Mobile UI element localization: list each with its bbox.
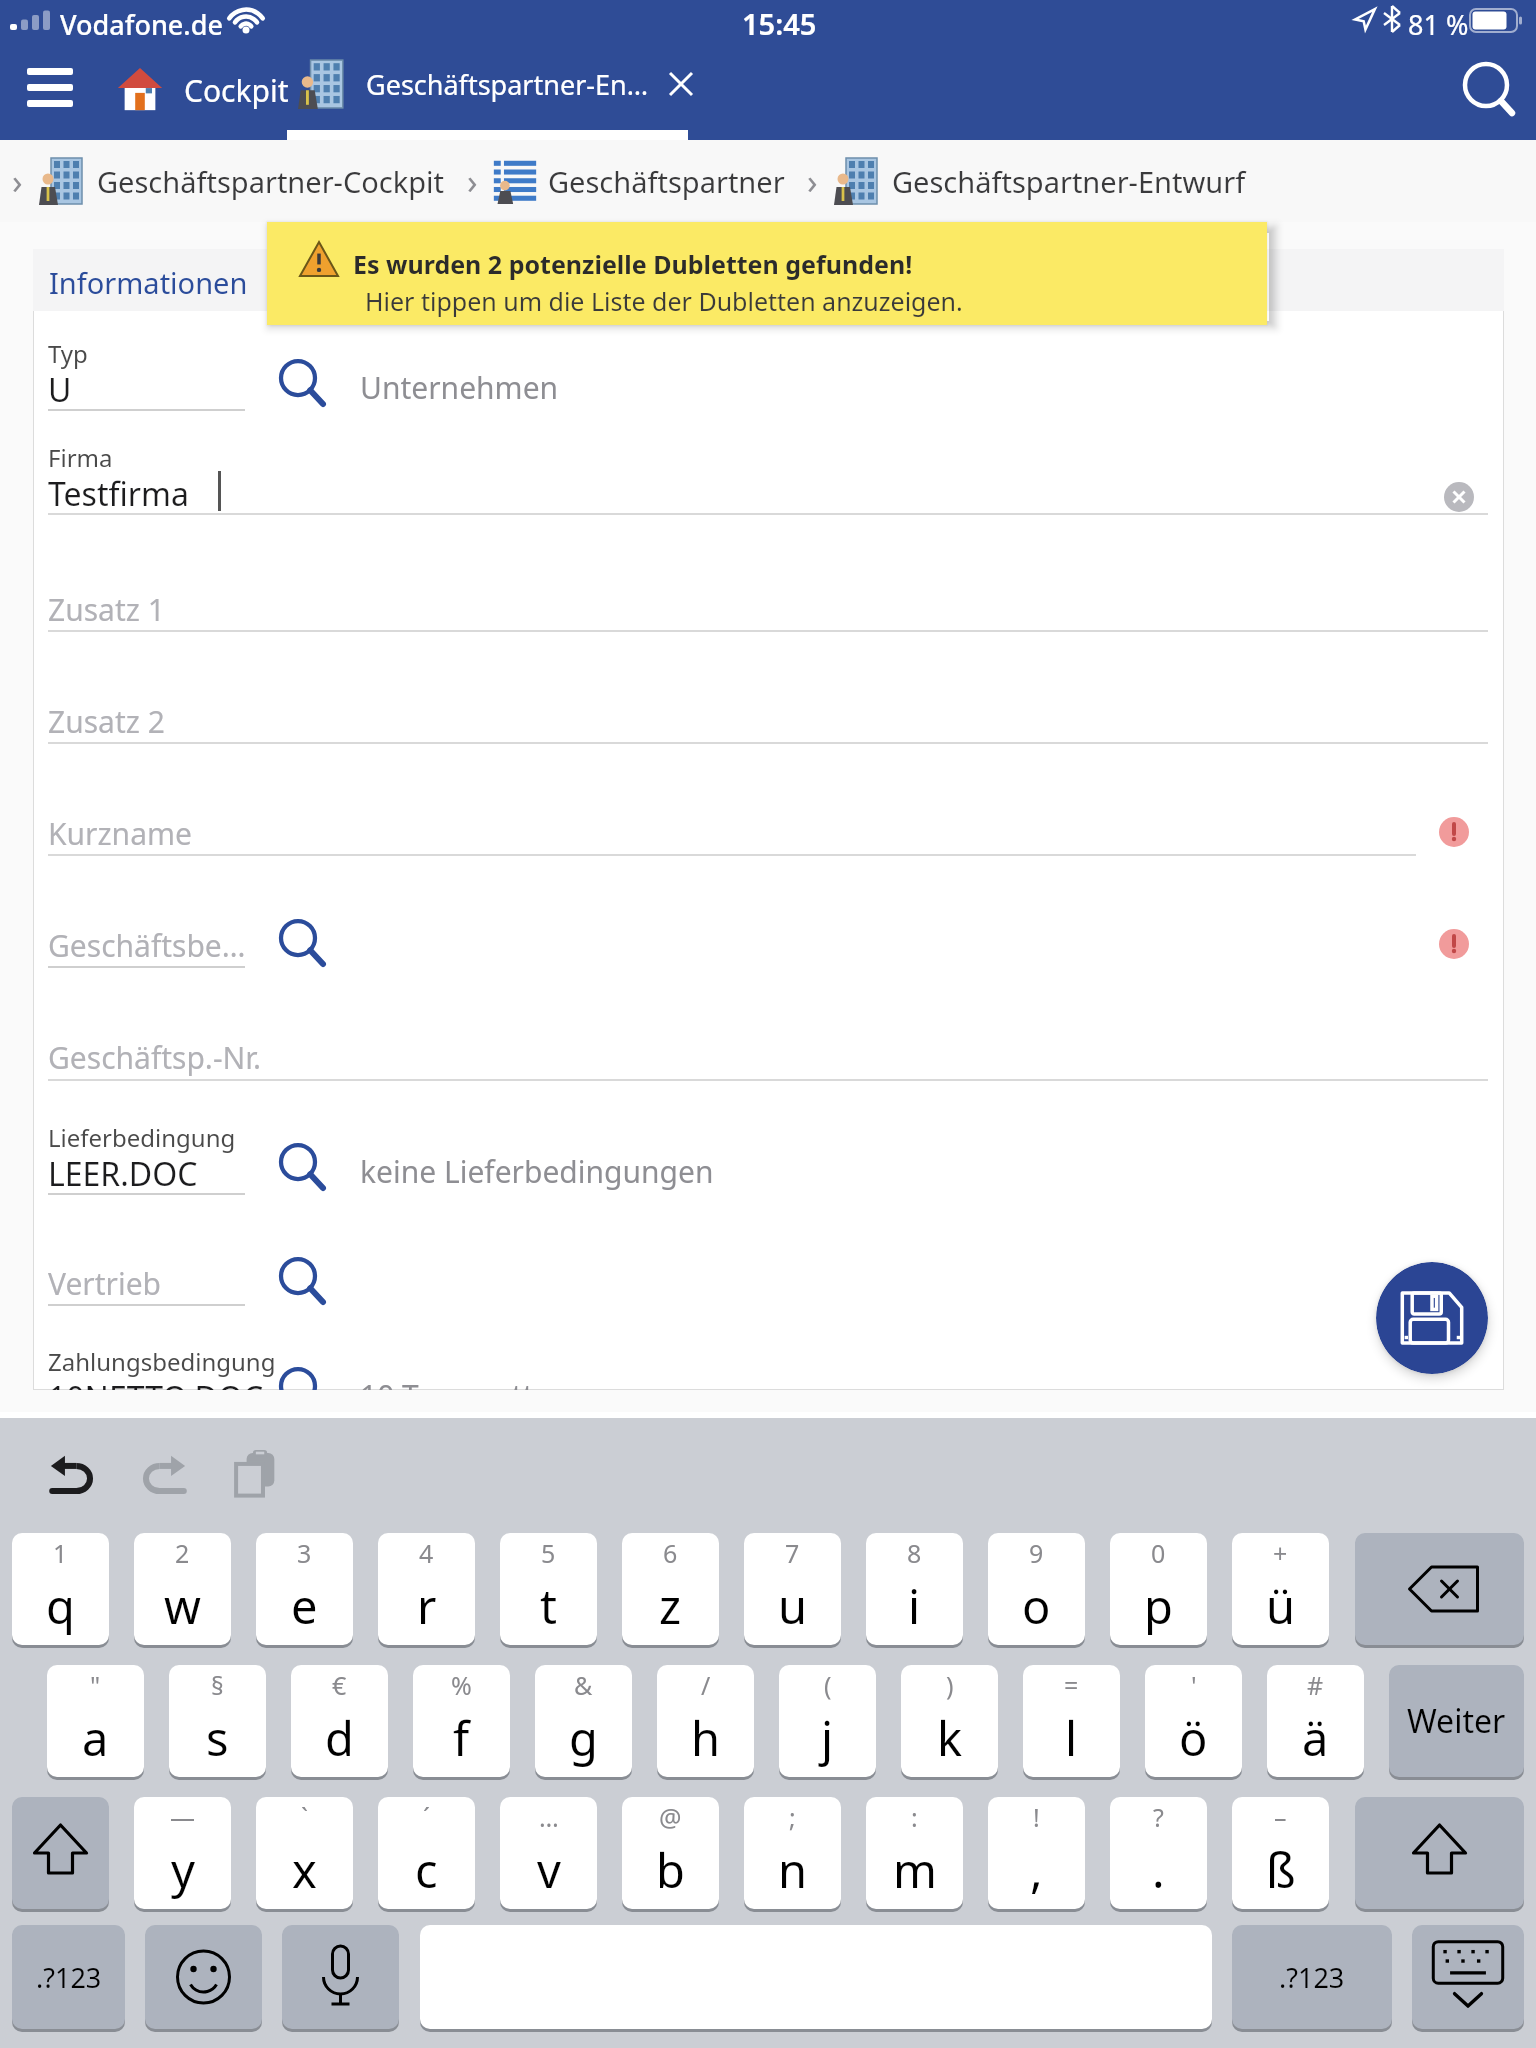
- button[interactable]: €: [291, 1665, 388, 1777]
- staticText: x: [292, 1838, 317, 1902]
- button[interactable]: Cockpit: [116, 58, 289, 122]
- button[interactable]: …: [500, 1797, 597, 1909]
- staticText: Informationen: [49, 263, 248, 302]
- button[interactable]: ': [1145, 1665, 1242, 1777]
- staticText: i: [908, 1574, 921, 1638]
- button[interactable]: @: [622, 1797, 719, 1909]
- button[interactable]: —: [134, 1797, 231, 1909]
- button[interactable]: %: [413, 1665, 510, 1777]
- staticText: Geschäftsbe…: [48, 925, 246, 966]
- staticText: 15:45: [742, 4, 817, 43]
- button[interactable]: [27, 68, 73, 112]
- staticText: 7: [785, 1536, 800, 1570]
- button[interactable]: [12, 1797, 109, 1909]
- button[interactable]: +: [1232, 1533, 1329, 1645]
- staticText: Vodafone.de: [60, 6, 223, 43]
- button[interactable]: &: [535, 1665, 632, 1777]
- staticText: ü: [1266, 1574, 1296, 1638]
- staticText: ›: [807, 158, 818, 204]
- button[interactable]: .?123: [12, 1925, 125, 2029]
- staticText: ': [1191, 1668, 1197, 1702]
- button[interactable]: [1355, 1797, 1524, 1909]
- button[interactable]: 4: [378, 1533, 475, 1645]
- button[interactable]: [234, 1450, 276, 1498]
- button[interactable]: 5: [500, 1533, 597, 1645]
- button[interactable]: ": [47, 1665, 144, 1777]
- button[interactable]: Geschäftspartner-Entwurf: [832, 156, 1246, 206]
- button[interactable]: [142, 1455, 186, 1497]
- staticText: Unternehmen: [360, 367, 559, 408]
- button[interactable]: 1: [12, 1533, 109, 1645]
- button[interactable]: Informationen: [33, 249, 265, 311]
- button[interactable]: #: [1267, 1665, 1364, 1777]
- staticText: Geschäftsp.-Nr.: [48, 1037, 261, 1078]
- staticText: ": [90, 1668, 101, 1702]
- staticText: 5: [541, 1536, 556, 1570]
- button[interactable]: [278, 1257, 328, 1307]
- button[interactable]: [50, 1455, 94, 1497]
- button[interactable]: [145, 1925, 262, 2029]
- button[interactable]: Geschäftspartner: [492, 158, 785, 204]
- button[interactable]: =: [1023, 1665, 1120, 1777]
- button[interactable]: Es wurden 2 potenzielle Dubletten gefund…: [267, 222, 1267, 325]
- button[interactable]: 0: [1110, 1533, 1207, 1645]
- staticText: Zusatz 1: [48, 589, 165, 630]
- button[interactable]: .?123: [1232, 1925, 1392, 2029]
- staticText: f: [453, 1706, 470, 1770]
- button[interactable]: [1444, 482, 1474, 512]
- button[interactable]: [1355, 1533, 1524, 1645]
- button[interactable]: !: [988, 1797, 1085, 1909]
- staticText: q: [46, 1574, 75, 1638]
- staticText: %: [451, 1668, 472, 1702]
- button[interactable]: Geschäftspartner-Cockpit: [37, 156, 445, 206]
- staticText: Geschäftspartner-Entwurf: [892, 162, 1246, 201]
- staticText: ä: [1302, 1706, 1329, 1770]
- staticText: Zahlungsbedingung: [48, 1345, 276, 1378]
- button[interactable]: ): [901, 1665, 998, 1777]
- staticText: ?: [1153, 1800, 1164, 1834]
- staticText: :: [911, 1800, 918, 1834]
- button[interactable]: [278, 359, 328, 409]
- staticText: Kurzname: [48, 813, 192, 854]
- button[interactable]: 3: [256, 1533, 353, 1645]
- button[interactable]: [278, 1367, 328, 1390]
- staticText: …: [539, 1800, 559, 1834]
- staticText: Testfirma: [48, 472, 189, 516]
- staticText: d: [325, 1706, 354, 1770]
- button[interactable]: [1412, 1925, 1524, 2029]
- staticText: .?123: [36, 1959, 102, 1996]
- button[interactable]: :: [866, 1797, 963, 1909]
- button[interactable]: 2: [134, 1533, 231, 1645]
- button[interactable]: /: [657, 1665, 754, 1777]
- staticText: (: [824, 1668, 832, 1702]
- staticText: ›: [12, 158, 23, 204]
- button[interactable]: Weiter: [1389, 1665, 1524, 1777]
- button[interactable]: [278, 1143, 328, 1193]
- staticText: c: [415, 1838, 438, 1902]
- button[interactable]: Geschäftspartner-Entwurf: [296, 50, 692, 118]
- button[interactable]: §: [169, 1665, 266, 1777]
- staticText: 2: [175, 1536, 190, 1570]
- staticText: s: [206, 1706, 229, 1770]
- button[interactable]: 7: [744, 1533, 841, 1645]
- staticText: —: [170, 1800, 196, 1834]
- button[interactable]: 6: [622, 1533, 719, 1645]
- staticText: Hier tippen um die Liste der Dubletten a…: [365, 284, 963, 318]
- staticText: Geschäftspartner-Cockpit: [97, 162, 445, 201]
- button[interactable]: [282, 1925, 399, 2029]
- button[interactable]: [1458, 60, 1518, 120]
- button[interactable]: ;: [744, 1797, 841, 1909]
- staticText: v: [537, 1838, 561, 1902]
- button[interactable]: 9: [988, 1533, 1085, 1645]
- button[interactable]: ?: [1110, 1797, 1207, 1909]
- button[interactable]: [1376, 1262, 1488, 1374]
- button[interactable]: –: [1232, 1797, 1329, 1909]
- button[interactable]: ´: [378, 1797, 475, 1909]
- staticText: Es wurden 2 potenzielle Dubletten gefund…: [353, 247, 913, 281]
- button[interactable]: [278, 919, 328, 969]
- staticText: –: [1274, 1800, 1287, 1834]
- button[interactable]: 8: [866, 1533, 963, 1645]
- button[interactable]: (: [779, 1665, 876, 1777]
- button[interactable]: `: [256, 1797, 353, 1909]
